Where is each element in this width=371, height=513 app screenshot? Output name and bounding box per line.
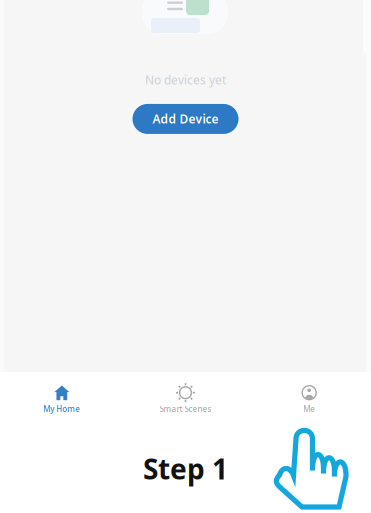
staticText: Me [303,404,315,414]
staticText: My Home [43,404,80,414]
button[interactable]: Add Device [132,104,238,134]
button[interactable]: My Home [0,373,124,419]
button[interactable]: Smart Scenes [124,373,247,419]
staticText: Add Device [152,111,218,127]
button[interactable]: Me [247,373,371,419]
staticText: Smart Scenes [159,404,211,414]
staticText: Step 1 [143,450,228,487]
staticText: No devices yet [145,72,226,88]
